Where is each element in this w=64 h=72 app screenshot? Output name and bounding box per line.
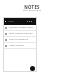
button[interactable]: Travel checklist bbox=[3, 43, 37, 49]
staticText: NOTES bbox=[0, 4, 64, 10]
button[interactable]: Client call follow up bbox=[3, 37, 37, 43]
staticText: Quarterly budget review bbox=[9, 26, 33, 29]
staticText: Client call follow up bbox=[9, 38, 29, 41]
staticText: Notes bbox=[8, 20, 14, 23]
button[interactable]: Team standup summary bbox=[3, 31, 37, 37]
staticText: Travel checklist bbox=[9, 44, 24, 47]
button[interactable]: Quarterly budget review bbox=[3, 25, 37, 31]
button[interactable]: Add note bbox=[30, 66, 35, 71]
staticText: Team standup summary bbox=[9, 32, 33, 35]
staticText: FOR BUSINESS bbox=[0, 8, 64, 11]
